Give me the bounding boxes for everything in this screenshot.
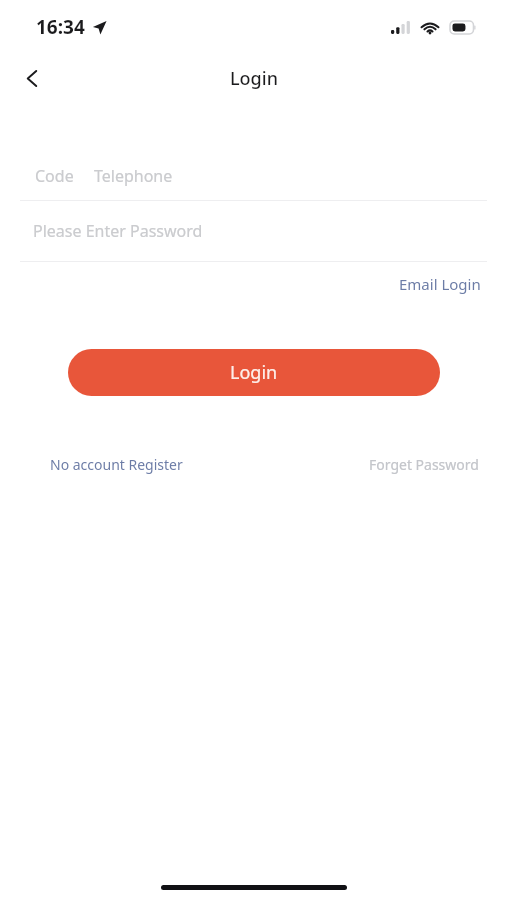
staticText: Login — [230, 360, 278, 385]
button[interactable]: No account Register — [48, 451, 185, 478]
button[interactable]: Back — [10, 56, 54, 100]
button[interactable]: Email Login — [395, 270, 485, 298]
button[interactable]: Forget Password — [367, 451, 481, 478]
staticText: Forget Password — [369, 455, 479, 474]
staticText: No account Register — [50, 455, 183, 474]
button[interactable]: Please Enter Password — [0, 201, 507, 261]
staticText: Code — [35, 165, 74, 187]
button[interactable]: Login — [68, 349, 440, 396]
staticText: Please Enter Password — [33, 220, 203, 242]
button[interactable]: Code — [0, 152, 507, 200]
staticText: 16:34 — [36, 14, 85, 40]
staticText: Email Login — [399, 274, 481, 294]
staticText: Login — [230, 66, 278, 91]
staticText: Telephone — [94, 165, 173, 187]
